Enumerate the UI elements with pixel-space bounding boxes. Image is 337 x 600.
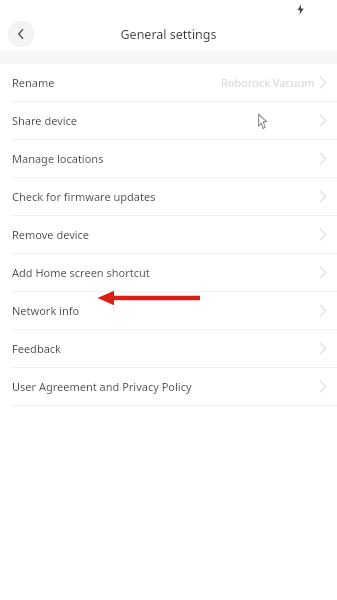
staticText: User Agreement and Privacy Policy <box>12 379 192 394</box>
staticText: Remove device <box>12 227 90 242</box>
staticText: Share device <box>12 113 78 128</box>
staticText: General settings <box>120 26 217 43</box>
staticText: Add Home screen shortcut <box>12 265 150 280</box>
button[interactable]: Remove device <box>0 216 337 253</box>
button[interactable]: Network info <box>0 292 337 329</box>
button[interactable]: User Agreement and Privacy Policy <box>0 368 337 405</box>
staticText: Roborock Vacuum <box>221 75 315 90</box>
staticText: Network info <box>12 303 80 318</box>
staticText: Feedback <box>12 341 61 356</box>
button[interactable]: Manage locations <box>0 140 337 177</box>
button[interactable]: Feedback <box>0 330 337 367</box>
button[interactable]: Rename <box>0 64 337 101</box>
button[interactable]: Add Home screen shortcut <box>0 254 337 291</box>
staticText: Manage locations <box>12 151 104 166</box>
staticText: Rename <box>12 75 55 90</box>
button[interactable]: Share device <box>0 102 337 139</box>
staticText: Check for firmware updates <box>12 189 156 204</box>
button[interactable]: Back <box>8 21 34 47</box>
button[interactable]: Check for firmware updates <box>0 178 337 215</box>
